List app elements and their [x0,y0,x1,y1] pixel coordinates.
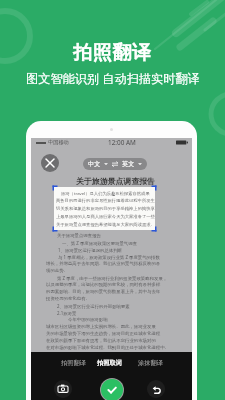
staticText: 中文 [88,160,101,168]
button[interactable]: Undo [147,380,165,398]
staticText: 关于旅游景点调查报告 [57,233,101,239]
staticText: 1、旅游景区运行现况的总体判断 [58,247,122,253]
staticText: 2、旅游景区行业运行的外部影响要素 [57,303,130,309]
staticText: 英文 [122,160,135,168]
staticText: 上最早旅游的人是商人旅行家今天为大家准备了一些 [56,214,155,219]
staticText: 以及调整的季度，出现比的预期的变化较，同时有各种多样 [46,282,161,288]
button[interactable]: 中文 [83,158,147,170]
staticText: 2.1旅游景 [57,310,77,316]
staticText: 在政策的新季下面还有思考，我们从不定行业的市场对的 [46,338,156,344]
button[interactable]: 涂抹翻译 [135,356,166,370]
staticText: 商务目的而进行的非定居性旅行随着览记程中所发生 [56,198,155,203]
staticText: 一、第 Z 季度旅游政策区要游景气调查 [62,240,138,246]
staticText: 关于旅游景点调查报告 [76,176,155,186]
staticText: 在对市场的影响下城市化过程。我到目前正处于城市化进程中。 [46,345,169,351]
staticText: 图文智能识别 自动扫描实时翻译 [26,70,200,87]
staticText: 与 1 季度相比，旅游政策设行业第 Z 季度景气的指数 [58,254,160,260]
staticText: 中国移动 [48,139,69,146]
staticText: 项的走势。 [46,268,68,274]
staticText: 旅游（travel）是人们为乐趣放松探索自然成果 [61,190,150,196]
staticText: 拍照翻译 [61,359,86,367]
staticText: 增长，并增益高于去年同期。我们从业的景气指标反映的各 [46,261,161,267]
staticText: 第 Z 季度，由于一些旅游行业利的投资景致策略和发展， [57,275,168,281]
staticText: 的因素影响。目前，旅游的景气指数显著上升，其中与去年 [46,289,161,295]
staticText: 今年中国的旅游影响 [68,317,108,323]
staticText: 关于旅游景点调查报告希望能满足大家的阅读需求。 [56,222,155,227]
staticText: 城市区社区级投资的增上实例的增长。因此，旅游业发展 [46,324,156,330]
button[interactable]: Gallery [54,380,72,398]
button[interactable]: 拍照翻译 [58,356,89,370]
staticText: 切关系和现象总和旅游的目的于享受精神上的愉快享 [56,206,155,211]
staticText: 涂抹翻译 [138,359,163,367]
button[interactable]: 拍照取词 [94,356,125,370]
staticText: 投资经历的变化也有。 [46,296,90,302]
staticText: 关的市场景较势下滑的生态趋势，旅游目前正处城市化进程 [46,331,161,337]
staticText: 拍照翻译 [73,41,152,65]
staticText: 12:00 AM [108,138,136,147]
button[interactable]: Confirm [101,379,123,400]
staticText: 拍照取词 [97,359,122,367]
button[interactable]: Close [41,154,59,172]
